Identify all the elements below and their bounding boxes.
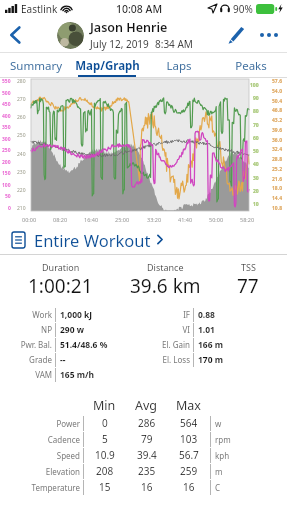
staticText: 1,000 kJ [60,309,93,321]
staticText: 259 [180,464,198,478]
staticText: Distance [147,261,184,273]
staticText: 39.6 [272,127,282,134]
staticText: 210 [17,205,26,212]
staticText: 70 [253,122,259,129]
staticText: Peaks [235,58,267,74]
staticText: 58:20 [240,216,255,223]
staticText: 16 [183,480,195,494]
staticText: 50:00 [209,216,224,223]
staticText: 250 [17,132,26,139]
staticText: 90% [233,2,253,16]
staticText: Duration [42,261,80,273]
staticText: 43.2 [272,117,282,124]
staticText: 103 [180,432,198,446]
staticText: 260 [17,114,26,121]
staticText: 50 [253,148,259,155]
staticText: VAM [35,369,52,380]
staticText: 46.8 [272,107,282,114]
button[interactable]: Edit [221,17,251,53]
staticText: 550 [2,78,11,85]
staticText: El. Loss [162,354,190,365]
staticText: 36.0 [272,137,282,144]
staticText: 56.7 [179,448,199,462]
staticText: 8:34 AM [155,37,193,51]
staticText: 400 [2,113,11,120]
staticText: Temperature [31,482,80,493]
button[interactable]: More options [251,17,287,53]
staticText: 15 [99,480,111,494]
staticText: 57.6 [272,78,282,85]
staticText: 32.4 [272,146,282,153]
button[interactable]: Entire Workout [0,224,287,255]
staticText: w [215,418,222,429]
staticText: July 12, 2019 [90,37,149,51]
staticText: Grade [29,354,52,365]
staticText: 40 [253,161,259,168]
staticText: Summary [10,58,62,74]
button[interactable]: Back [0,17,30,53]
staticText: 00:00 [22,216,37,223]
staticText: 54.0 [272,88,282,95]
staticText: 235 [138,464,156,478]
button[interactable]: Laps [143,53,215,78]
staticText: 10:08 AM [116,2,163,16]
staticText: Entire Workout [34,229,151,251]
staticText: 286 [138,416,156,430]
staticText: 39.4 [137,448,157,462]
staticText: 230 [17,169,26,176]
staticText: Eastlink [21,2,58,16]
staticText: 39.6 km [130,273,201,299]
staticText: 25.2 [272,166,282,173]
staticText: m [215,466,223,477]
staticText: 10.9 [95,448,115,462]
staticText: 77 [237,273,259,299]
staticText: Cadence [47,434,80,445]
staticText: 166 m [198,339,224,351]
staticText: 14.4 [272,195,282,202]
staticText: 33:20 [147,216,162,223]
staticText: 16:40 [84,216,99,223]
staticText: 79 [141,432,153,446]
staticText: 41:40 [178,216,193,223]
staticText: Avg [135,397,158,414]
staticText: 290 w [60,324,85,336]
staticText: IF [183,309,190,320]
staticText: 564 [180,416,198,430]
staticText: 100 [2,182,11,189]
staticText: 18.0 [272,185,282,192]
staticText: 20 [253,188,259,195]
staticText: 10 [253,201,259,208]
staticText: 0 [102,416,108,430]
staticText: 100 [250,82,259,89]
staticText: 350 [2,124,11,131]
staticText: 240 [17,151,26,158]
staticText: 170 m [198,354,224,366]
staticText: NP [41,324,52,335]
button[interactable]: Map/Graph [71,53,143,78]
staticText: 50 [5,193,11,200]
staticText: Map/Graph [75,58,140,74]
staticText: Work [32,309,52,320]
staticText: 270 [17,96,26,103]
button[interactable]: Jason Henrie [57,19,193,51]
staticText: 250 [2,147,11,154]
button[interactable]: Summary [0,53,71,78]
staticText: Laps [166,58,192,74]
staticText: 21.6 [272,176,282,183]
staticText: Jason Henrie [90,19,168,36]
staticText: 220 [17,187,26,194]
staticText: TSS [241,261,256,273]
staticText: 16 [141,480,153,494]
staticText: Min [93,397,116,414]
staticText: 500 [2,90,11,97]
button[interactable]: Peaks [215,53,287,78]
staticText: 80 [253,108,259,115]
staticText: El. Gain [161,339,190,350]
staticText: 150 [2,170,11,177]
staticText: C [215,482,221,493]
staticText: Pwr. Bal. [20,339,52,350]
staticText: 200 [2,159,11,166]
staticText: Power [56,418,80,429]
staticText: Elevation [45,466,80,477]
staticText: 0 [8,205,11,212]
